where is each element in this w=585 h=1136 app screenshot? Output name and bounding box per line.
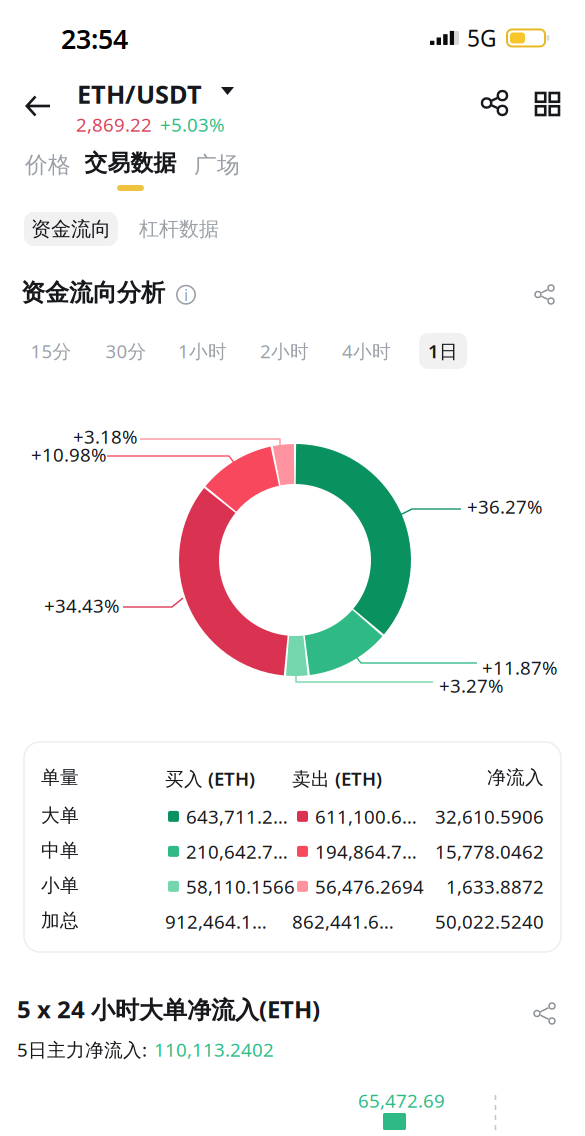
button[interactable]: 价格 bbox=[17, 143, 79, 187]
staticText: 2小时 bbox=[260, 339, 309, 363]
staticText: 611,100.6… bbox=[315, 804, 417, 829]
button[interactable]: 30分 bbox=[99, 333, 153, 369]
staticText: 58,110.1566 bbox=[186, 874, 295, 899]
staticText: 卖出 (ETH) bbox=[292, 766, 382, 791]
staticText: 194,864.7… bbox=[315, 839, 417, 864]
button[interactable]: Back bbox=[12, 81, 64, 131]
staticText: 15分 bbox=[30, 339, 71, 363]
staticText: 单量 bbox=[41, 766, 79, 789]
button[interactable]: Share net inflow bbox=[524, 993, 565, 1034]
staticText: +10.98% bbox=[31, 442, 107, 467]
staticText: +3.27% bbox=[439, 673, 504, 698]
staticText: 买入 (ETH) bbox=[165, 766, 255, 791]
button[interactable]: 资金流向 bbox=[24, 212, 118, 246]
staticText: 杠杆数据 bbox=[139, 217, 219, 241]
staticText: ETH/USDT bbox=[77, 77, 202, 111]
button[interactable]: 交易数据 bbox=[77, 141, 184, 199]
button[interactable]: 广场 bbox=[186, 143, 248, 187]
button[interactable]: Share bbox=[470, 79, 519, 127]
staticText: 30分 bbox=[105, 339, 146, 363]
staticText: 912,464.1… bbox=[165, 909, 267, 934]
button[interactable]: More bbox=[524, 81, 571, 127]
button[interactable]: Share analysis bbox=[524, 274, 565, 315]
button[interactable]: 1日 bbox=[419, 333, 467, 369]
staticText: 净流入 bbox=[487, 766, 544, 789]
staticText: 32,610.5906 bbox=[435, 804, 544, 829]
staticText: +36.27% bbox=[467, 494, 543, 519]
staticText: 4小时 bbox=[342, 339, 391, 363]
staticText: 862,441.6… bbox=[292, 909, 394, 934]
staticText: 1日 bbox=[428, 339, 458, 363]
staticText: +3.18% bbox=[73, 424, 138, 449]
button[interactable]: 杠杆数据 bbox=[132, 212, 226, 246]
staticText: 643,711.2… bbox=[186, 804, 288, 829]
staticText: 大单 bbox=[41, 804, 79, 827]
staticText: +34.43% bbox=[44, 593, 120, 618]
staticText: 110,113.2402 bbox=[154, 1037, 274, 1062]
button[interactable]: 1小时 bbox=[172, 333, 233, 369]
staticText: 5G bbox=[467, 23, 497, 53]
staticText: 1小时 bbox=[178, 339, 227, 363]
staticText: 50,022.5240 bbox=[435, 909, 544, 934]
staticText: +5.03% bbox=[160, 112, 225, 137]
staticText: +11.87% bbox=[482, 655, 558, 680]
staticText: 65,472.69 bbox=[358, 1088, 445, 1113]
staticText: i bbox=[184, 284, 188, 305]
button[interactable]: 2小时 bbox=[254, 333, 315, 369]
staticText: 资金流向分析 bbox=[21, 278, 165, 307]
staticText: 23:54 bbox=[61, 21, 128, 56]
staticText: 广场 bbox=[194, 151, 240, 179]
staticText: 56,476.2694 bbox=[315, 874, 424, 899]
button[interactable]: 15分 bbox=[24, 333, 78, 369]
staticText: 5 x 24 小时大单净流入(ETH) bbox=[17, 993, 320, 1025]
staticText: 中单 bbox=[41, 839, 79, 862]
staticText: 1,633.8872 bbox=[446, 874, 544, 899]
staticText: 15,778.0462 bbox=[435, 839, 544, 864]
staticText: 交易数据 bbox=[84, 149, 176, 177]
staticText: 2,869.22 bbox=[76, 112, 152, 137]
staticText: 加总 bbox=[41, 909, 79, 932]
staticText: 价格 bbox=[25, 151, 71, 179]
staticText: 资金流向 bbox=[31, 217, 111, 241]
button[interactable]: 4小时 bbox=[336, 333, 397, 369]
staticText: 小单 bbox=[41, 874, 79, 897]
staticText: 5日主力净流入: bbox=[17, 1037, 147, 1062]
staticText: 210,642.7… bbox=[186, 839, 288, 864]
